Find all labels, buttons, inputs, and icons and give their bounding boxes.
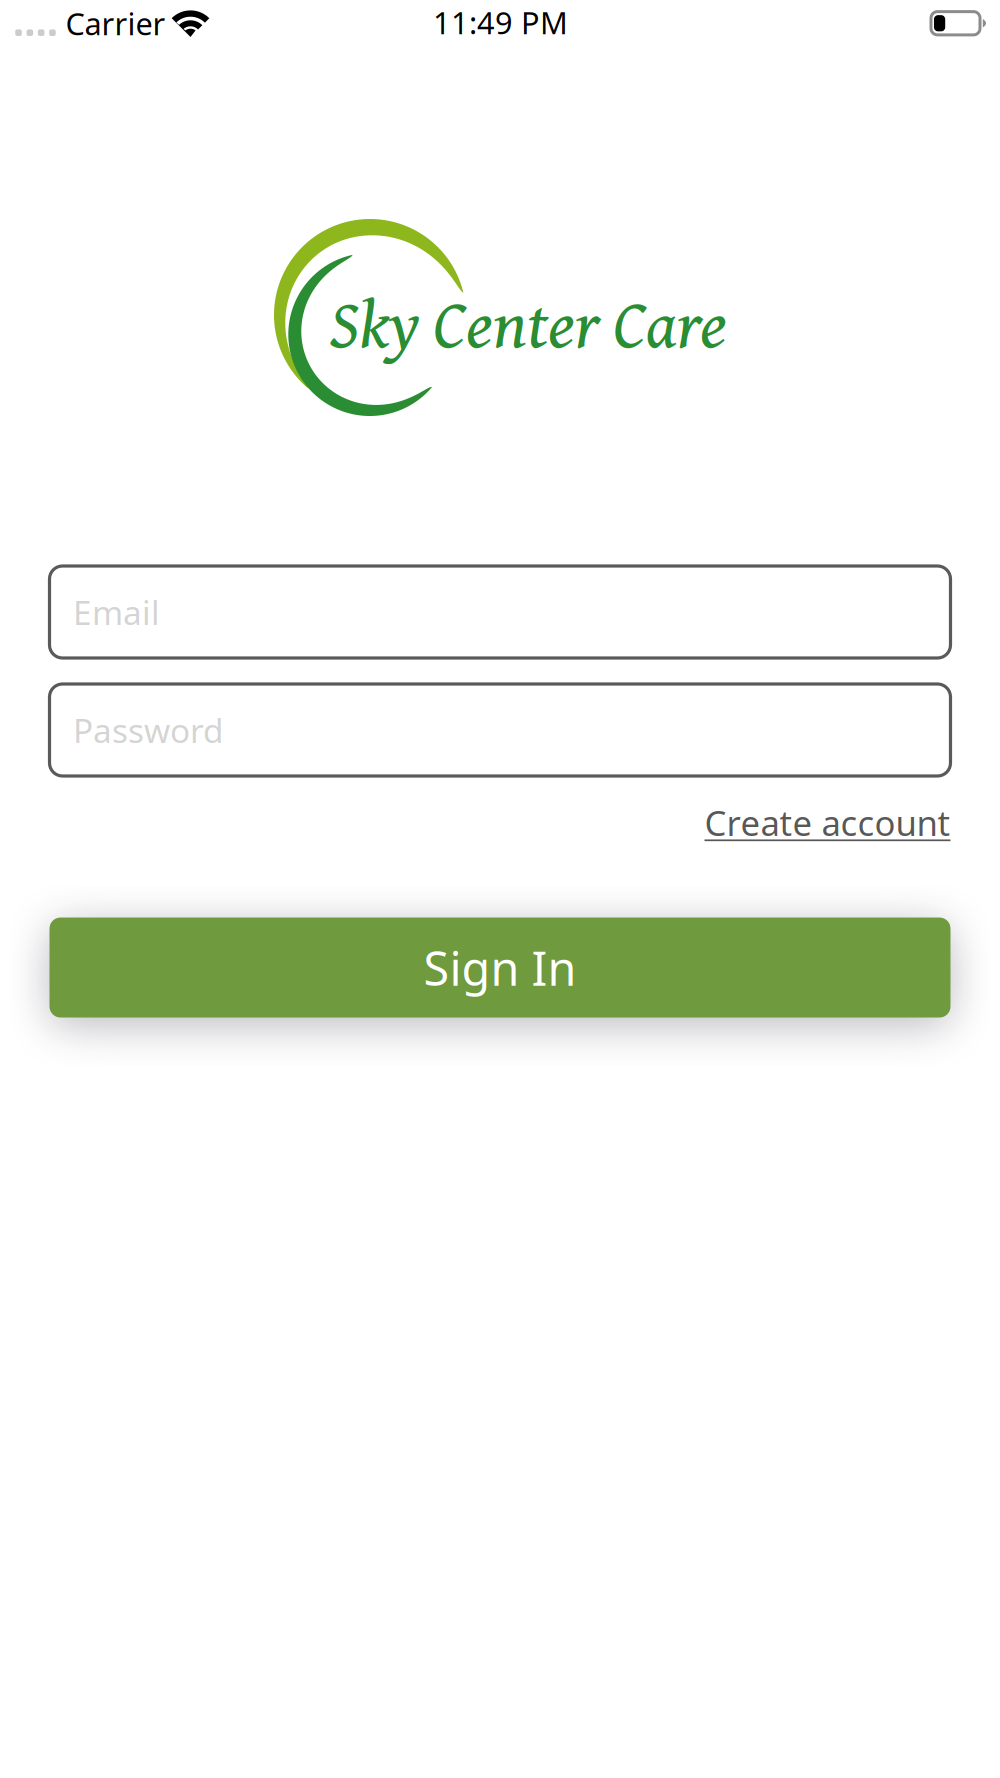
staticText: Carrier [65, 3, 165, 44]
staticText: Email [73, 590, 160, 634]
button[interactable]: Password [49, 684, 950, 776]
button[interactable]: Sign In [49, 917, 950, 1017]
staticText: Sign In [423, 937, 576, 999]
button[interactable]: Email [49, 566, 950, 658]
button[interactable]: Create account [704, 799, 950, 845]
staticText: Sky Center Care [329, 274, 727, 372]
staticText: Create account [704, 799, 950, 845]
staticText: 11:49 PM [433, 2, 568, 43]
staticText: Password [73, 708, 224, 752]
